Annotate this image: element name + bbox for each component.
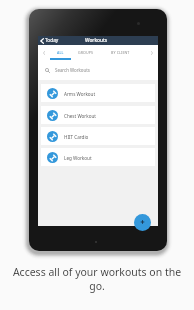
button[interactable]: Previous tabs: [38, 45, 50, 60]
button[interactable]: Search Workouts: [38, 60, 158, 80]
staticText: HIIT Cardio: [64, 134, 89, 140]
staticText: Chest Workout: [64, 113, 96, 119]
staticText: Workouts: [85, 37, 108, 44]
button[interactable]: Arms Workout: [41, 84, 155, 102]
staticText: ALL: [57, 50, 64, 55]
button[interactable]: GROUPS: [72, 45, 100, 60]
button[interactable]: Today: [38, 36, 62, 45]
button[interactable]: BY CLIENT: [106, 45, 134, 60]
staticText: Arms Workout: [64, 91, 96, 97]
staticText: Search Workouts: [55, 67, 90, 73]
staticText: Today: [45, 37, 59, 44]
button[interactable]: Add workout: [134, 214, 151, 231]
staticText: Access all of your workouts on the go.: [9, 265, 185, 293]
staticText: BY CLIENT: [111, 50, 130, 55]
staticText: Leg Workout: [64, 155, 92, 161]
button[interactable]: ALL: [46, 45, 74, 60]
button[interactable]: HIIT Cardio: [41, 127, 155, 145]
button[interactable]: Chest Workout: [41, 106, 155, 124]
staticText: GROUPS: [78, 50, 94, 55]
button[interactable]: Leg Workout: [41, 148, 155, 166]
button[interactable]: Next tabs: [146, 45, 158, 60]
